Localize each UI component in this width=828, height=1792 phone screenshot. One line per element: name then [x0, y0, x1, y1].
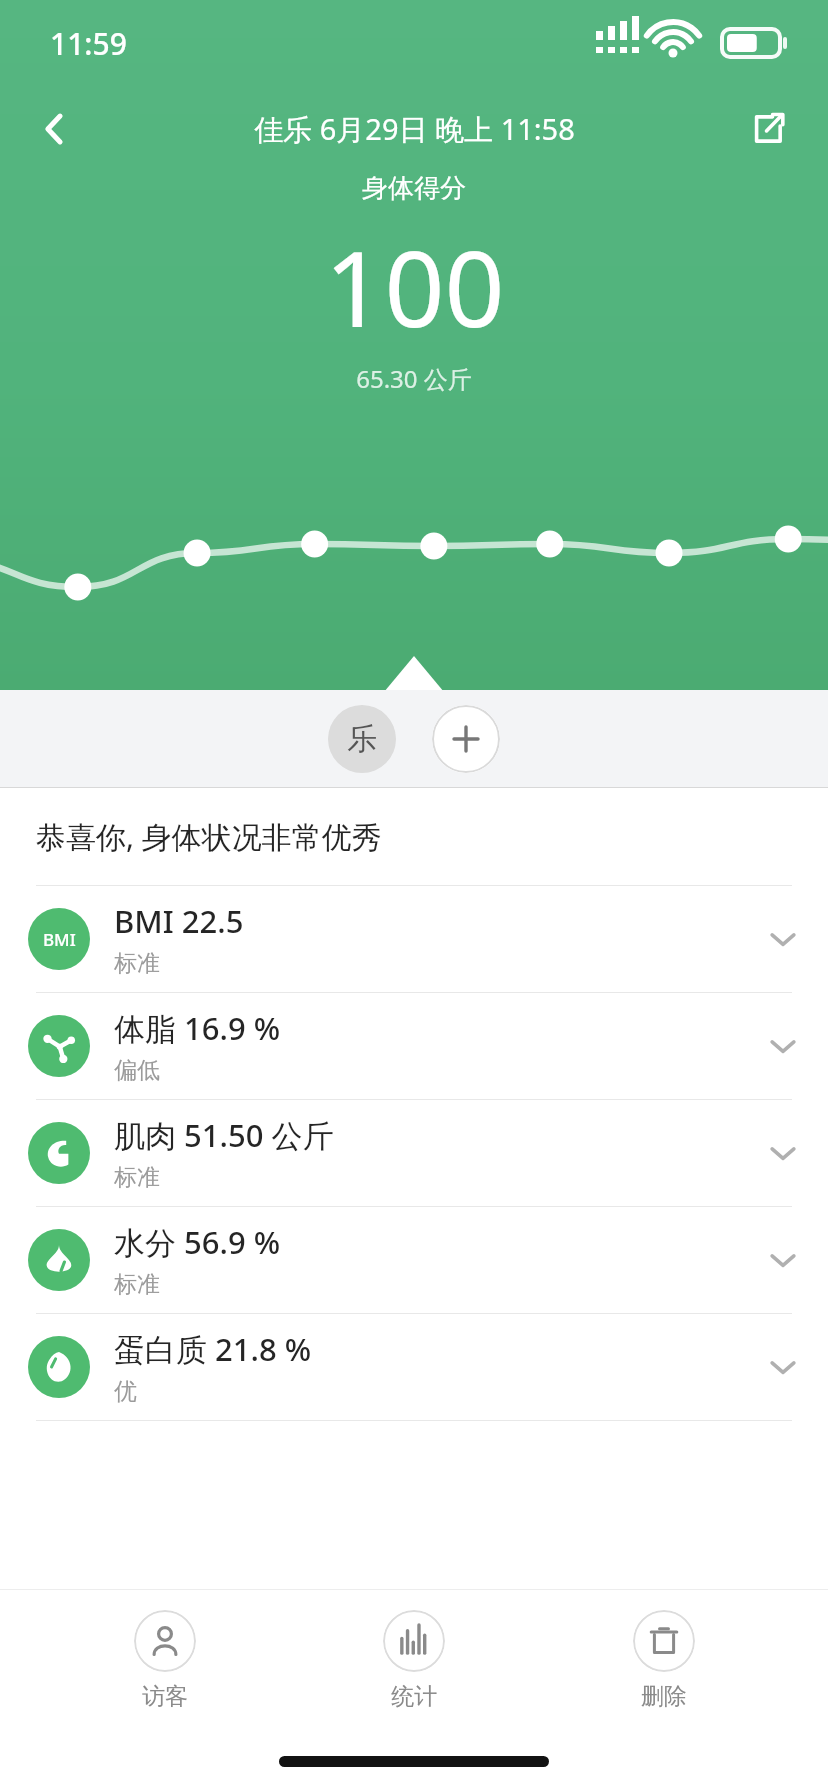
staticText: 偏低	[114, 1056, 160, 1085]
button[interactable]: 水分 56.9 %	[0, 1207, 828, 1313]
staticText: 蛋白质 21.8 %	[114, 1328, 312, 1370]
staticText: BMI	[43, 928, 76, 951]
button[interactable]: Add user	[432, 705, 500, 773]
staticText: 标准	[114, 949, 160, 978]
button[interactable]: 体脂 16.9 %	[0, 993, 828, 1099]
button[interactable]: 统计	[329, 1604, 499, 1717]
staticText: 乐	[347, 720, 377, 758]
button[interactable]: 乐	[328, 705, 396, 773]
staticText: 身体得分	[362, 172, 466, 205]
button[interactable]: BMI	[0, 886, 828, 992]
button[interactable]: 蛋白质 21.8 %	[0, 1314, 828, 1420]
staticText: 65.30 公斤	[356, 362, 472, 395]
staticText: 肌肉 51.50 公斤	[114, 1114, 334, 1156]
staticText: 恭喜你, 身体状况非常优秀	[36, 816, 382, 857]
staticText: 100	[324, 215, 505, 358]
staticText: 访客	[142, 1682, 188, 1711]
staticText: 体脂 16.9 %	[114, 1007, 281, 1049]
staticText: 11:59	[50, 23, 127, 64]
staticText: 统计	[391, 1682, 437, 1711]
button[interactable]: Share	[732, 93, 804, 165]
staticText: 优	[114, 1377, 137, 1406]
staticText: BMI 22.5	[114, 900, 244, 942]
staticText: 标准	[114, 1270, 160, 1299]
staticText: 佳乐 6月29日 晚上 11:58	[254, 109, 575, 149]
button[interactable]: 访客	[80, 1604, 250, 1717]
button[interactable]: Back	[20, 93, 92, 165]
button[interactable]: 删除	[579, 1604, 749, 1717]
staticText: 标准	[114, 1163, 160, 1192]
button[interactable]: 肌肉 51.50 公斤	[0, 1100, 828, 1206]
staticText: 水分 56.9 %	[114, 1221, 281, 1263]
staticText: 删除	[641, 1682, 687, 1711]
